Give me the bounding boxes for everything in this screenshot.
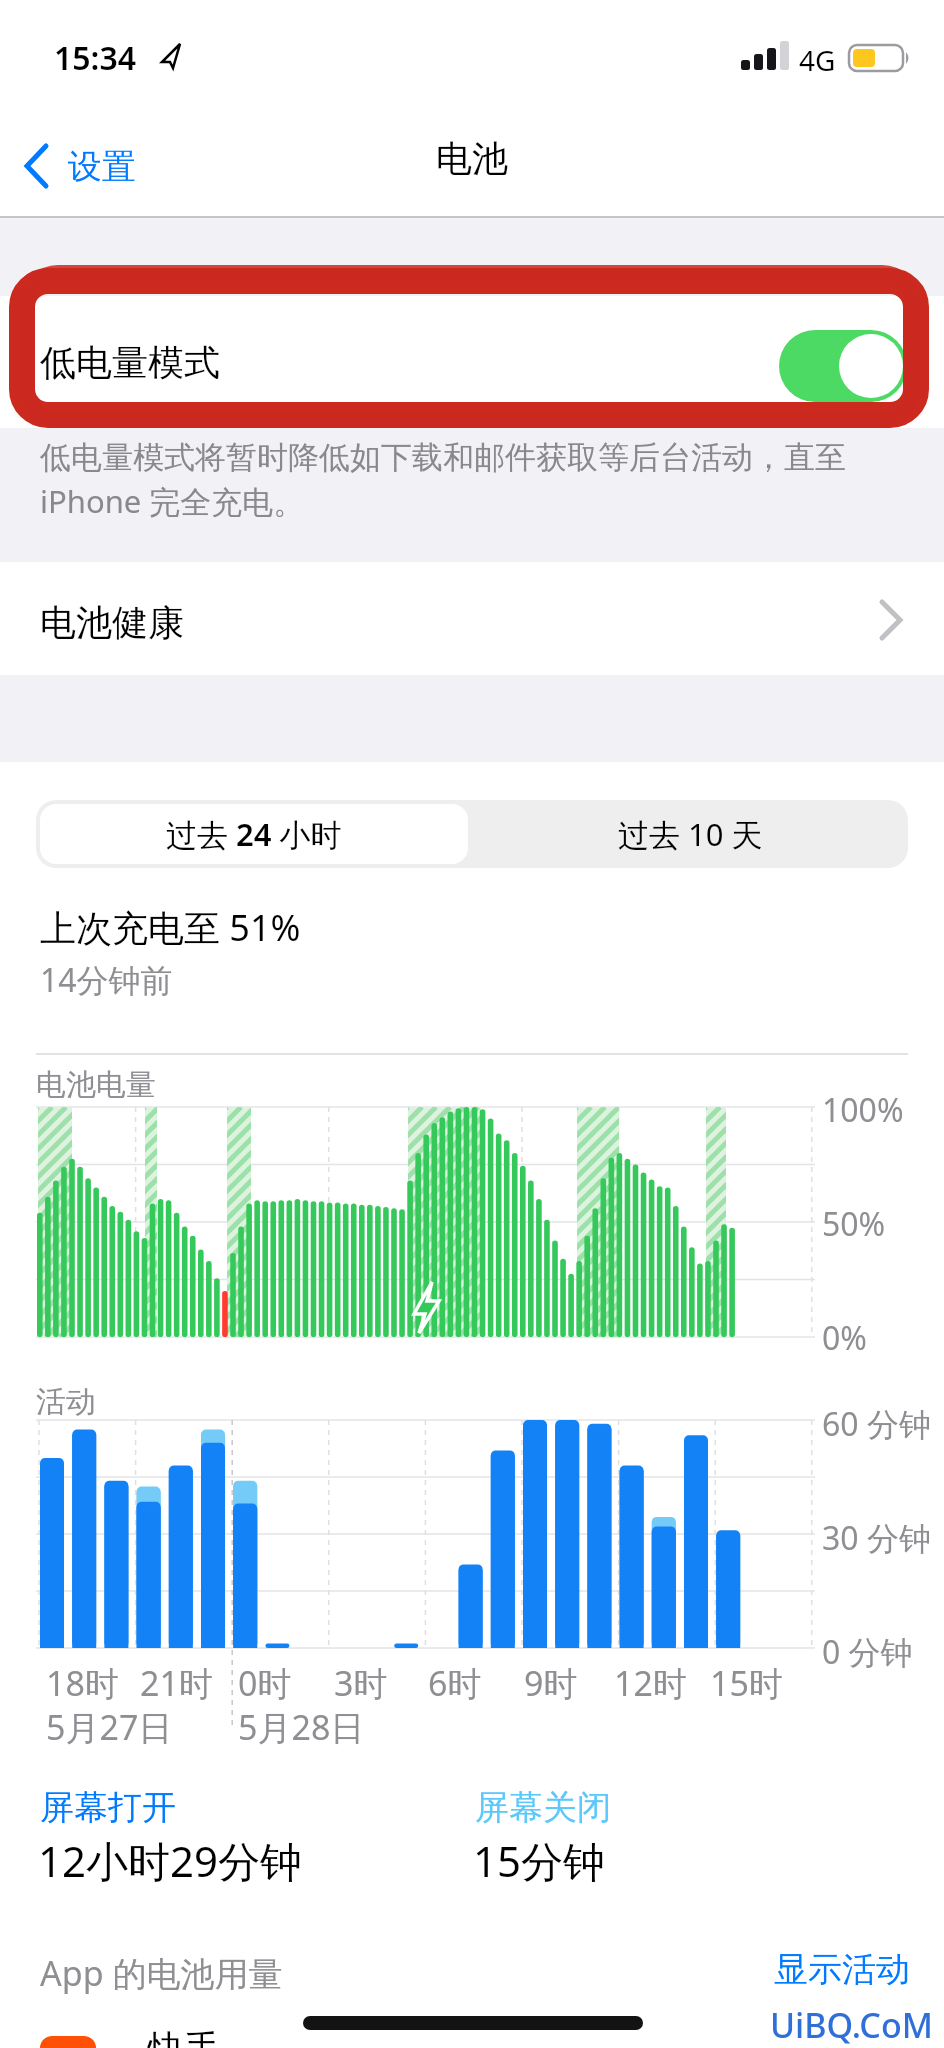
staticText: 0 分钟 xyxy=(822,1630,913,1674)
staticText: 屏幕打开 xyxy=(40,1786,176,1829)
button[interactable]: 设置 xyxy=(20,138,136,194)
button[interactable]: 过去 10 天 xyxy=(472,800,908,868)
staticText: 15时 xyxy=(710,1660,783,1706)
staticText: 18时 xyxy=(46,1660,119,1706)
staticText: 100% xyxy=(822,1088,904,1132)
staticText: 活动 xyxy=(36,1383,96,1421)
button[interactable]: 显示活动 xyxy=(770,1944,914,1995)
staticText: 3时 xyxy=(334,1660,388,1706)
staticText: 6时 xyxy=(428,1660,482,1706)
staticText: 9时 xyxy=(524,1660,578,1706)
staticText: 30 分钟 xyxy=(822,1516,931,1560)
staticText: 21时 xyxy=(140,1660,213,1706)
button[interactable]: 过去 24 小时 xyxy=(40,804,468,864)
staticText: 15:34 xyxy=(54,36,137,80)
staticText: App 的电池用量 xyxy=(40,1950,283,1996)
staticText: 上次充电至 51% xyxy=(40,903,301,952)
button[interactable]: 快手 xyxy=(40,2026,220,2048)
staticText: 4G xyxy=(799,41,836,79)
staticText: 快手 xyxy=(148,2026,220,2048)
staticText: 屏幕关闭 xyxy=(475,1786,611,1829)
staticText: 15分钟 xyxy=(473,1832,606,1889)
button[interactable]: 电池健康 xyxy=(0,562,944,675)
staticText: 低电量模式将暂时降低如下载和邮件获取等后台活动，直至 xyxy=(40,438,846,477)
staticText: 电池电量 xyxy=(36,1066,156,1104)
staticText: 电池健康 xyxy=(40,600,184,645)
staticText: 电池 xyxy=(436,136,508,181)
staticText: 14分钟前 xyxy=(40,958,173,1002)
staticText: UiBQ.CoM xyxy=(770,2002,933,2048)
staticText: 显示活动 xyxy=(774,1948,910,1991)
staticText: 50% xyxy=(822,1202,886,1246)
staticText: 12时 xyxy=(614,1660,687,1706)
staticText: 5月28日 xyxy=(238,1704,365,1750)
staticText: 设置 xyxy=(68,145,136,188)
staticText: iPhone 完全充电。 xyxy=(40,480,305,522)
staticText: 5月27日 xyxy=(46,1704,173,1750)
staticText: 60 分钟 xyxy=(822,1402,931,1446)
staticText: 过去 10 天 xyxy=(618,813,763,855)
staticText: 0时 xyxy=(238,1660,292,1706)
staticText: 低电量模式 xyxy=(40,340,220,385)
staticText: 0% xyxy=(822,1316,867,1360)
staticText: 12小时29分钟 xyxy=(38,1832,303,1889)
button[interactable]: 低电量模式 xyxy=(0,296,944,428)
staticText: 过去 24 小时 xyxy=(166,813,342,855)
